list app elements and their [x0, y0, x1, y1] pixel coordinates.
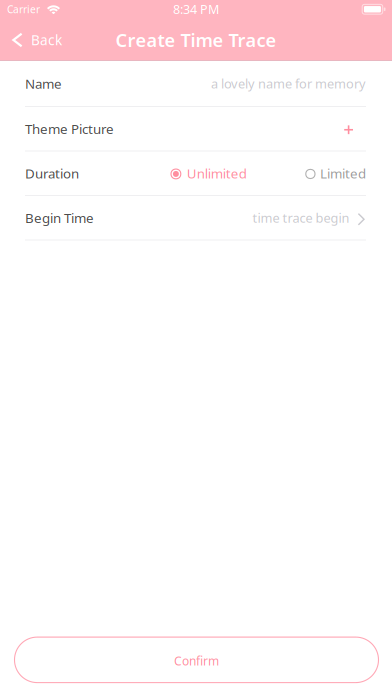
- button[interactable]: Name: [0, 61, 392, 106]
- staticText: 8:34 PM: [173, 1, 219, 18]
- button[interactable]: Unlimited: [171, 164, 247, 182]
- staticText: Carrier: [7, 2, 40, 16]
- button[interactable]: Confirm: [14, 637, 378, 683]
- staticText: time trace begin: [252, 209, 349, 226]
- staticText: Confirm: [174, 653, 219, 669]
- staticText: Create Time Trace: [115, 28, 276, 52]
- staticText: Begin Time: [25, 209, 94, 227]
- staticText: Unlimited: [187, 164, 247, 182]
- button[interactable]: Back: [0, 20, 74, 60]
- button[interactable]: Theme Picture: [0, 107, 392, 150]
- button[interactable]: Begin Time: [0, 196, 392, 239]
- staticText: Name: [25, 74, 62, 93]
- button[interactable]: Limited: [306, 164, 366, 182]
- staticText: a lovely name for memory: [211, 75, 366, 92]
- staticText: Theme Picture: [25, 120, 114, 138]
- staticText: Back: [31, 31, 62, 49]
- staticText: Limited: [320, 164, 366, 182]
- staticText: Duration: [25, 164, 79, 182]
